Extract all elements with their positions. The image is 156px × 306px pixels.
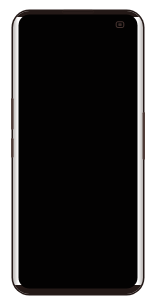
button[interactable]: Smartphone device illustration (0, 0, 156, 306)
